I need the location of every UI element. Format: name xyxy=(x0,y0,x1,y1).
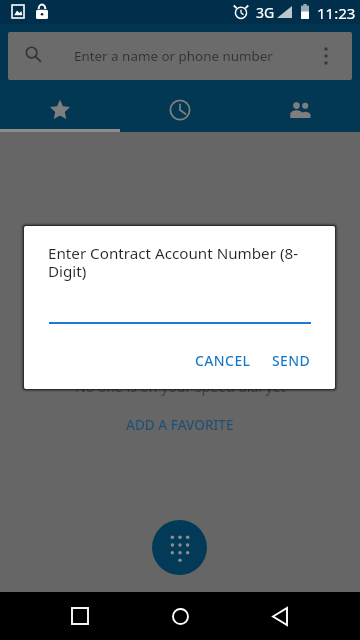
button[interactable]: Recent apps xyxy=(56,592,104,640)
staticText: 11:23 xyxy=(317,3,356,23)
staticText: 3G xyxy=(256,3,275,22)
staticText: Enter Contract Account Number (8-Digit) xyxy=(48,243,302,281)
button[interactable]: CANCEL xyxy=(187,336,259,384)
button[interactable]: Home xyxy=(156,592,204,640)
button[interactable]: SEND xyxy=(264,336,319,384)
button[interactable]: Back xyxy=(256,592,304,640)
button[interactable]: Dialpad xyxy=(152,520,207,575)
staticText: CANCEL xyxy=(195,351,251,370)
staticText: Enter a name or phone number xyxy=(74,47,273,65)
staticText: SEND xyxy=(272,351,311,370)
staticText: ADD A FAVORITE xyxy=(126,415,234,434)
button[interactable]: Favorites xyxy=(0,80,120,129)
button[interactable]: ADD A FAVORITE xyxy=(114,409,246,440)
button[interactable]: More options xyxy=(300,32,352,80)
button[interactable]: Recents xyxy=(120,80,240,129)
staticText: No one is on your speed dial yet xyxy=(75,377,286,396)
button[interactable]: Enter a name or phone number xyxy=(8,32,352,80)
button[interactable]: Contacts xyxy=(240,80,360,129)
